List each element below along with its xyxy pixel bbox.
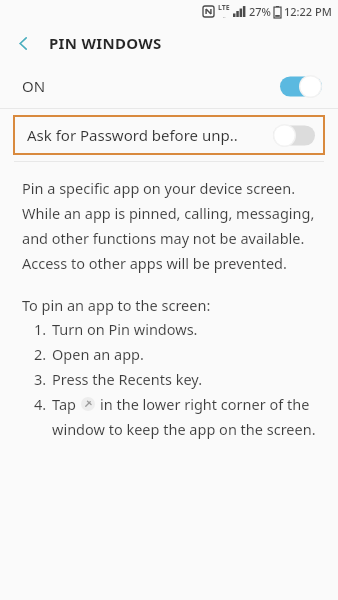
button[interactable]: Ask for Password before unp.. [13, 115, 325, 155]
staticText: Tap [52, 394, 76, 414]
staticText: PIN WINDOWS [49, 33, 162, 53]
staticText: 12:22 PM [284, 4, 332, 19]
staticText: 4. [34, 394, 47, 414]
button[interactable]: ON [0, 64, 338, 108]
staticText: in the lower right corner of the [100, 394, 310, 414]
staticText: 1. [34, 319, 47, 339]
staticText: .. [223, 13, 226, 20]
staticText: 3. [34, 369, 47, 389]
button[interactable]: Off [273, 124, 315, 147]
staticText: Press the Recents key. [52, 369, 203, 389]
button[interactable]: On [280, 75, 322, 98]
staticText: To pin an app to the screen: [22, 295, 211, 315]
button[interactable]: Back [6, 26, 40, 60]
staticText: Ask for Password before unp.. [27, 125, 238, 145]
staticText: Turn on Pin windows. [52, 319, 198, 339]
staticText: 27% [249, 4, 271, 19]
staticText: ON [22, 76, 46, 96]
staticText: LTE [218, 3, 230, 13]
staticText: Open an app. [52, 344, 144, 364]
staticText: Pin a specific app on your device screen… [22, 178, 320, 273]
staticText: window to keep the app on the screen. [52, 419, 316, 439]
staticText: 2. [34, 344, 47, 364]
